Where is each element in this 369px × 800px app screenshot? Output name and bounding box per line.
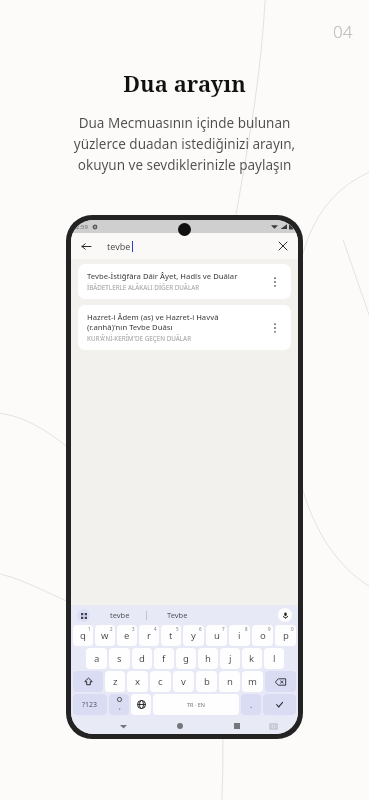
staticText: 1 bbox=[88, 626, 91, 632]
button[interactable]: c bbox=[150, 671, 171, 692]
staticText: 9 bbox=[268, 626, 271, 632]
button[interactable]: b bbox=[196, 671, 217, 692]
staticText: z bbox=[113, 675, 118, 688]
staticText: q bbox=[80, 629, 86, 642]
button[interactable]: s bbox=[109, 648, 130, 669]
staticText: m bbox=[248, 675, 257, 688]
staticText: 8 bbox=[245, 626, 248, 632]
staticText: k bbox=[249, 652, 255, 665]
button[interactable]: tevbe bbox=[106, 608, 134, 622]
staticText: r bbox=[147, 629, 151, 642]
staticText: g bbox=[183, 652, 189, 665]
button[interactable]: z bbox=[105, 671, 125, 692]
staticText: v bbox=[181, 675, 186, 688]
button[interactable]: u bbox=[206, 625, 227, 646]
button[interactable]: Backspace bbox=[265, 671, 296, 692]
staticText: 7 bbox=[222, 626, 225, 632]
button[interactable]: Tevbe bbox=[163, 608, 192, 622]
staticText: u bbox=[214, 629, 220, 642]
staticText: 5 bbox=[176, 626, 179, 632]
staticText: . bbox=[250, 699, 253, 710]
button[interactable]: k bbox=[242, 648, 262, 669]
button[interactable]: w bbox=[95, 625, 115, 646]
staticText: ?123 bbox=[82, 700, 98, 710]
staticText: 6 bbox=[199, 626, 202, 632]
staticText: l bbox=[273, 652, 276, 665]
staticText: x bbox=[135, 675, 141, 688]
staticText: d bbox=[139, 652, 145, 665]
button[interactable]: f bbox=[154, 648, 174, 669]
button[interactable]: o bbox=[252, 625, 273, 646]
staticText: Dua Mecmuasının içinde bulunan yüzlerce … bbox=[18, 114, 351, 174]
staticText: 4 bbox=[154, 626, 157, 632]
button[interactable]: More options bbox=[268, 318, 282, 338]
button[interactable]: g bbox=[176, 648, 196, 669]
staticText: Tevbe bbox=[167, 610, 188, 620]
button[interactable]: ?123 bbox=[73, 694, 107, 715]
button[interactable]: Emoji and comma bbox=[109, 694, 129, 715]
button[interactable]: t bbox=[161, 625, 181, 646]
staticText: p bbox=[283, 629, 289, 642]
button[interactable]: i bbox=[229, 625, 250, 646]
staticText: t bbox=[169, 629, 173, 642]
button[interactable]: Keyboard switcher bbox=[267, 720, 279, 732]
button[interactable]: Hazret-i Âdem (as) ve Hazret-i Havvâ bbox=[78, 305, 291, 350]
button[interactable]: Toolbar bbox=[77, 609, 90, 622]
staticText: Dua arayın bbox=[123, 68, 246, 98]
button[interactable]: y bbox=[183, 625, 204, 646]
button[interactable]: l bbox=[264, 648, 284, 669]
staticText: 04 bbox=[333, 20, 353, 43]
button[interactable]: Tevbe-İstiğfâra Dâir Âyet, Hadîs ve Duâl… bbox=[78, 264, 291, 299]
button[interactable]: q bbox=[73, 625, 93, 646]
button[interactable]: . bbox=[241, 694, 261, 715]
staticText: KUR'Â'Nİ-KERÎM'DE GEÇEN DUÂLAR bbox=[87, 334, 192, 343]
staticText: tevbe bbox=[110, 610, 130, 620]
button[interactable]: Recents bbox=[230, 719, 244, 733]
button[interactable]: Home bbox=[173, 719, 187, 733]
staticText: o bbox=[260, 629, 266, 642]
staticText: (r.anhâ)'nın Tevbe Duâsı bbox=[87, 322, 173, 332]
staticText: 2 bbox=[110, 626, 113, 632]
button[interactable]: j bbox=[220, 648, 240, 669]
button[interactable]: Space bbox=[153, 694, 239, 715]
button[interactable]: Back bbox=[79, 239, 93, 253]
staticText: TR · EN bbox=[187, 701, 206, 708]
staticText: i bbox=[238, 629, 241, 642]
staticText: tevbe bbox=[107, 240, 131, 252]
staticText: İBÂDETLERLE ALÂKALI DİĞER DUÂLAR bbox=[87, 283, 200, 292]
button[interactable]: Shift bbox=[73, 671, 103, 692]
staticText: 3 bbox=[132, 626, 135, 632]
staticText: b bbox=[204, 675, 210, 688]
staticText: Hazret-i Âdem (as) ve Hazret-i Havvâ bbox=[87, 312, 219, 322]
staticText: , bbox=[119, 702, 121, 712]
staticText: y bbox=[191, 629, 196, 642]
button[interactable]: e bbox=[117, 625, 137, 646]
button[interactable]: Change language bbox=[131, 694, 151, 715]
staticText: Tevbe-İstiğfâra Dâir Âyet, Hadîs ve Duâl… bbox=[87, 271, 238, 281]
button[interactable]: d bbox=[132, 648, 152, 669]
staticText: s bbox=[117, 652, 122, 665]
staticText: a bbox=[94, 652, 100, 665]
staticText: w bbox=[101, 629, 109, 642]
button[interactable]: h bbox=[198, 648, 218, 669]
button[interactable]: x bbox=[127, 671, 148, 692]
button[interactable]: v bbox=[173, 671, 194, 692]
button[interactable]: r bbox=[139, 625, 159, 646]
button[interactable]: a bbox=[86, 648, 107, 669]
button[interactable]: m bbox=[242, 671, 263, 692]
staticText: h bbox=[205, 652, 211, 665]
staticText: 0 bbox=[291, 626, 294, 632]
staticText: e bbox=[124, 629, 130, 642]
staticText: 2:59 bbox=[76, 223, 88, 231]
button[interactable]: Clear bbox=[276, 239, 290, 253]
button[interactable]: Voice input bbox=[278, 608, 292, 622]
button[interactable]: More options bbox=[268, 272, 282, 292]
button[interactable]: p bbox=[275, 625, 296, 646]
button[interactable]: n bbox=[219, 671, 240, 692]
button[interactable]: Search bbox=[263, 694, 296, 715]
staticText: f bbox=[162, 652, 166, 665]
staticText: c bbox=[158, 675, 163, 688]
staticText: j bbox=[229, 652, 232, 665]
button[interactable]: Hide keyboard bbox=[116, 719, 130, 733]
staticText: n bbox=[227, 675, 233, 688]
